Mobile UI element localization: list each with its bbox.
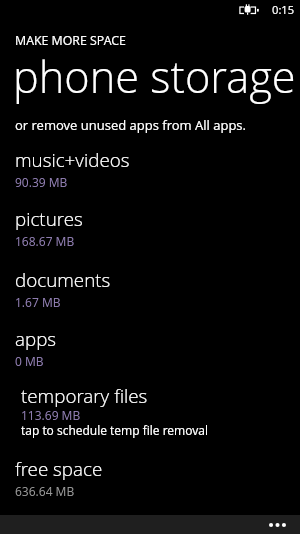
staticText: 168.67 MB bbox=[15, 233, 75, 249]
button[interactable]: free space bbox=[15, 454, 300, 500]
staticText: 1.67 MB bbox=[15, 294, 61, 310]
button[interactable]: pictures bbox=[15, 204, 300, 250]
staticText: or remove unused apps from All apps. bbox=[15, 116, 247, 134]
staticText: 636.64 MB bbox=[15, 483, 75, 499]
staticText: 0 MB bbox=[15, 353, 44, 369]
staticText: phone storage bbox=[13, 47, 296, 106]
staticText: music+videos bbox=[15, 147, 130, 173]
button[interactable]: documents bbox=[15, 265, 300, 311]
staticText: 0:15 bbox=[272, 2, 295, 17]
button[interactable]: More options bbox=[255, 518, 300, 532]
staticText: temporary files bbox=[21, 383, 148, 409]
staticText: 113.69 MB bbox=[21, 407, 81, 423]
button[interactable]: music+videos bbox=[15, 145, 300, 191]
staticText: apps bbox=[15, 326, 57, 352]
staticText: MAKE MORE SPACE bbox=[15, 32, 126, 49]
staticText: pictures bbox=[15, 206, 83, 232]
staticText: documents bbox=[15, 267, 111, 293]
button[interactable]: apps bbox=[15, 324, 300, 370]
other: Battery charging bbox=[239, 4, 259, 16]
button[interactable]: temporary files bbox=[21, 381, 300, 438]
staticText: 90.39 MB bbox=[15, 174, 68, 190]
staticText: free space bbox=[15, 456, 103, 482]
staticText: tap to schedule temp file removal bbox=[21, 422, 208, 438]
